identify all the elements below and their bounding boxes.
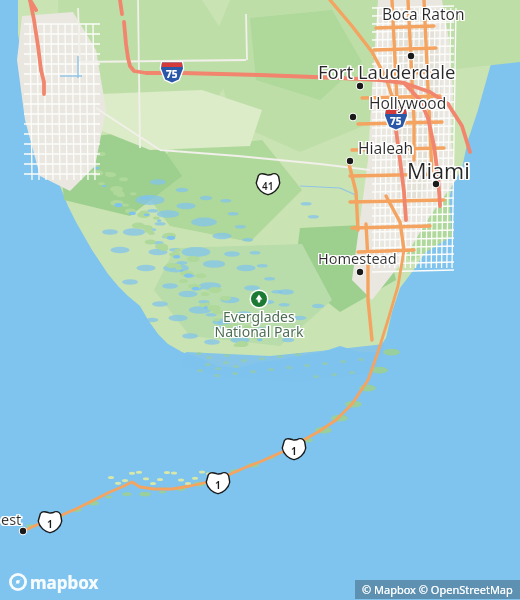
button[interactable]: Mapbox logo (6, 570, 98, 596)
button[interactable]: Map data attribution (372, 582, 520, 600)
